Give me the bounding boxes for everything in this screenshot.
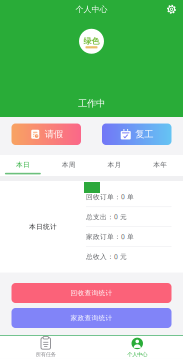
staticText: 所有任务 — [36, 351, 56, 358]
staticText: 绿色 — [83, 36, 99, 46]
staticText: 本年 — [153, 161, 167, 169]
button[interactable]: Settings — [167, 1, 183, 18]
button[interactable]: 复工 — [102, 123, 171, 145]
staticText: 回收查询统计 — [70, 289, 112, 297]
staticText: 家政订单：0 单 — [86, 232, 134, 241]
staticText: 总收入：0 元 — [86, 252, 127, 261]
button[interactable]: 本月 — [91, 154, 137, 177]
staticText: 总支出：0 元 — [86, 212, 127, 221]
button[interactable]: 所有任务 — [0, 334, 91, 359]
button[interactable]: 家政查询统计 — [11, 308, 171, 328]
staticText: 家政查询统计 — [70, 314, 112, 322]
staticText: 复工 — [135, 128, 153, 140]
staticText: 本周 — [62, 161, 76, 169]
button[interactable]: 本年 — [137, 154, 183, 177]
staticText: 个人中心 — [75, 4, 107, 14]
button[interactable]: 请假 — [11, 123, 81, 145]
button[interactable]: 本日 — [0, 154, 46, 177]
staticText: 个人中心 — [127, 351, 147, 358]
staticText: 本日统计 — [29, 223, 57, 231]
staticText: 本月 — [107, 161, 121, 169]
staticText: 本日 — [16, 161, 30, 169]
button[interactable]: 回收查询统计 — [11, 283, 171, 303]
button[interactable]: 本周 — [46, 154, 92, 177]
button[interactable]: 个人中心 — [91, 334, 183, 359]
staticText: 工作中 — [78, 98, 105, 109]
staticText: 请假 — [45, 128, 63, 140]
staticText: 回收订单：0 单 — [86, 192, 134, 201]
